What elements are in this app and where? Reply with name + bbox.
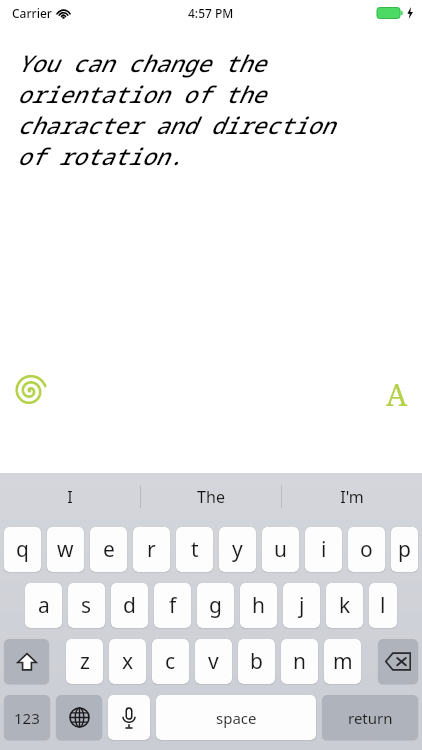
- staticText: orientation of the: [17, 78, 266, 109]
- button[interactable]: c: [152, 639, 189, 684]
- button[interactable]: e: [90, 527, 127, 572]
- button[interactable]: I: [0, 473, 140, 520]
- staticText: x: [122, 647, 134, 676]
- button[interactable]: Rotation direction: [11, 372, 49, 410]
- button[interactable]: n: [281, 639, 318, 684]
- button[interactable]: z: [66, 639, 103, 684]
- button[interactable]: s: [68, 583, 105, 628]
- button[interactable]: v: [195, 639, 232, 684]
- staticText: 123: [14, 708, 40, 728]
- staticText: d: [123, 591, 136, 620]
- staticText: q: [16, 535, 29, 564]
- staticText: n: [293, 647, 306, 676]
- button[interactable]: f: [154, 583, 191, 628]
- button[interactable]: i: [305, 527, 342, 572]
- button[interactable]: The: [141, 473, 281, 520]
- button[interactable]: A: [381, 374, 413, 406]
- button[interactable]: o: [348, 527, 385, 572]
- staticText: l: [380, 591, 386, 620]
- staticText: z: [80, 647, 90, 676]
- button[interactable]: space: [156, 695, 316, 740]
- button[interactable]: l: [369, 583, 397, 628]
- staticText: k: [339, 591, 351, 620]
- button[interactable]: Key: [4, 639, 49, 684]
- button[interactable]: r: [133, 527, 170, 572]
- staticText: character and direction: [17, 109, 335, 140]
- staticText: g: [209, 591, 222, 620]
- button[interactable]: return: [322, 695, 418, 740]
- button[interactable]: m: [324, 639, 361, 684]
- button[interactable]: a: [25, 583, 62, 628]
- staticText: v: [208, 647, 219, 676]
- button[interactable]: 123: [4, 695, 50, 740]
- staticText: y: [232, 535, 243, 564]
- staticText: w: [57, 535, 74, 564]
- button[interactable]: q: [4, 527, 41, 572]
- button[interactable]: y: [219, 527, 256, 572]
- staticText: c: [165, 647, 176, 676]
- staticText: of rotation.: [17, 140, 183, 171]
- staticText: m: [333, 647, 353, 676]
- button[interactable]: w: [47, 527, 84, 572]
- staticText: r: [147, 535, 156, 564]
- button[interactable]: u: [262, 527, 299, 572]
- button[interactable]: g: [197, 583, 234, 628]
- button[interactable]: k: [326, 583, 363, 628]
- staticText: return: [348, 708, 393, 728]
- staticText: b: [250, 647, 263, 676]
- staticText: 4:57 PM: [188, 5, 234, 21]
- button[interactable]: I'm: [282, 473, 422, 520]
- button[interactable]: p: [391, 527, 418, 572]
- button[interactable]: j: [283, 583, 320, 628]
- button[interactable]: x: [109, 639, 146, 684]
- staticText: I: [67, 486, 73, 508]
- staticText: o: [360, 535, 373, 564]
- staticText: h: [252, 591, 265, 620]
- staticText: p: [398, 535, 411, 564]
- staticText: e: [103, 535, 115, 564]
- button[interactable]: Dictation: [108, 695, 150, 740]
- button[interactable]: d: [111, 583, 148, 628]
- staticText: f: [169, 591, 177, 620]
- staticText: You can change the: [17, 47, 266, 78]
- staticText: Carrier: [12, 5, 52, 21]
- button[interactable]: t: [176, 527, 213, 572]
- staticText: A: [386, 374, 408, 406]
- staticText: i: [321, 535, 327, 564]
- button[interactable]: Change keyboard language: [56, 695, 102, 740]
- staticText: s: [81, 591, 92, 620]
- staticText: t: [191, 535, 199, 564]
- button[interactable]: h: [240, 583, 277, 628]
- staticText: u: [274, 535, 287, 564]
- button[interactable]: b: [238, 639, 275, 684]
- staticText: j: [299, 591, 305, 620]
- button[interactable]: Key: [378, 639, 418, 684]
- staticText: The: [197, 486, 225, 508]
- staticText: a: [38, 591, 50, 620]
- staticText: space: [216, 708, 257, 728]
- staticText: I'm: [340, 486, 364, 508]
